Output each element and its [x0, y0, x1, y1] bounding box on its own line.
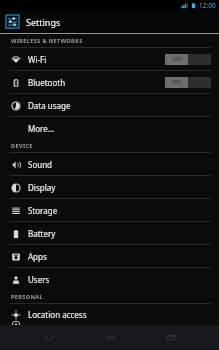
- staticText: Battery: [28, 228, 56, 239]
- button[interactable]: Settings icon: [4, 13, 21, 30]
- staticText: Apps: [28, 251, 47, 262]
- staticText: OFF: [172, 79, 182, 86]
- button[interactable]: Storage: [0, 199, 219, 221]
- staticText: Location access: [28, 309, 87, 320]
- button[interactable]: Battery: [0, 222, 219, 244]
- staticText: Users: [28, 274, 50, 285]
- button[interactable]: Bluetooth: [0, 71, 219, 93]
- button[interactable]: Apps: [0, 245, 219, 267]
- button[interactable]: Users: [0, 268, 219, 290]
- staticText: Display: [28, 182, 56, 193]
- staticText: More...: [28, 123, 55, 134]
- staticText: DEVICE: [11, 142, 33, 149]
- staticText: Data usage: [28, 100, 71, 111]
- button[interactable]: Display: [0, 176, 219, 198]
- button[interactable]: Toggle off: [165, 54, 211, 65]
- button[interactable]: Wi-Fi: [0, 48, 219, 70]
- staticText: Bluetooth: [28, 77, 66, 88]
- staticText: Sound: [28, 159, 53, 170]
- staticText: WIRELESS & NETWORKS: [11, 37, 83, 44]
- staticText: Settings: [26, 16, 61, 28]
- button[interactable]: Recent apps: [158, 325, 184, 350]
- button[interactable]: Location access: [0, 304, 219, 325]
- button[interactable]: Back: [35, 325, 61, 350]
- button[interactable]: Home: [97, 325, 123, 350]
- staticText: PERSONAL: [11, 293, 44, 300]
- staticText: Wi-Fi: [28, 54, 47, 65]
- button[interactable]: Sound: [0, 153, 219, 175]
- button[interactable]: More...: [0, 117, 219, 139]
- staticText: Storage: [28, 205, 58, 216]
- staticText: 12:00: [199, 1, 216, 10]
- button[interactable]: Toggle off: [165, 77, 211, 88]
- button[interactable]: Data usage: [0, 94, 219, 116]
- staticText: OFF: [172, 56, 182, 63]
